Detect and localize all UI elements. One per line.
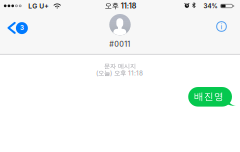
staticText: 배진영	[194, 90, 224, 103]
staticText: i	[220, 22, 222, 31]
button[interactable]: Details	[213, 18, 230, 35]
button[interactable]: Back, 3 unread	[3, 16, 29, 40]
staticText: LG U+	[28, 2, 48, 10]
staticText: #0011	[109, 40, 130, 48]
staticText: 오후 11:18	[105, 1, 137, 10]
staticText: (오늘) 오후 11:18	[96, 69, 143, 77]
staticText: 3	[20, 24, 24, 31]
staticText: 문자 메시지	[104, 62, 136, 70]
staticText: 34%	[203, 2, 217, 10]
